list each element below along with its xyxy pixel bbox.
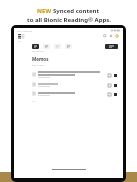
button[interactable]: Add xyxy=(109,34,113,38)
button[interactable]: Tool xyxy=(43,44,50,49)
button[interactable]: More options xyxy=(113,83,117,87)
button[interactable]: Share memo xyxy=(107,83,111,87)
button[interactable]: More options xyxy=(113,73,117,77)
staticText: End xyxy=(32,100,36,103)
button[interactable]: Share memo xyxy=(14,80,123,89)
staticText: NEW xyxy=(37,7,53,15)
button[interactable]: Tool xyxy=(54,44,61,49)
button[interactable]: Share memo xyxy=(107,73,111,77)
button[interactable]: Share memo xyxy=(14,89,123,98)
button[interactable]: Share memo xyxy=(107,92,111,96)
button[interactable]: Share memo xyxy=(14,69,123,80)
staticText: Text settings xyxy=(32,50,44,53)
button[interactable]: Selected tool xyxy=(32,44,39,49)
staticText: 9:41 Mon 24 xyxy=(17,29,33,32)
staticText: to all Bionic Reading® Apps. xyxy=(27,16,111,24)
staticText: Sort by date xyxy=(32,64,45,67)
staticText: br xyxy=(18,39,21,42)
button[interactable]: Search xyxy=(103,34,107,38)
button[interactable]: Profile xyxy=(115,34,119,38)
button[interactable]: Tool xyxy=(65,44,72,49)
button[interactable]: Selected tool xyxy=(105,44,118,49)
staticText: Synced content xyxy=(53,7,100,15)
button[interactable]: More options xyxy=(113,92,117,96)
staticText: Memos xyxy=(32,56,49,62)
